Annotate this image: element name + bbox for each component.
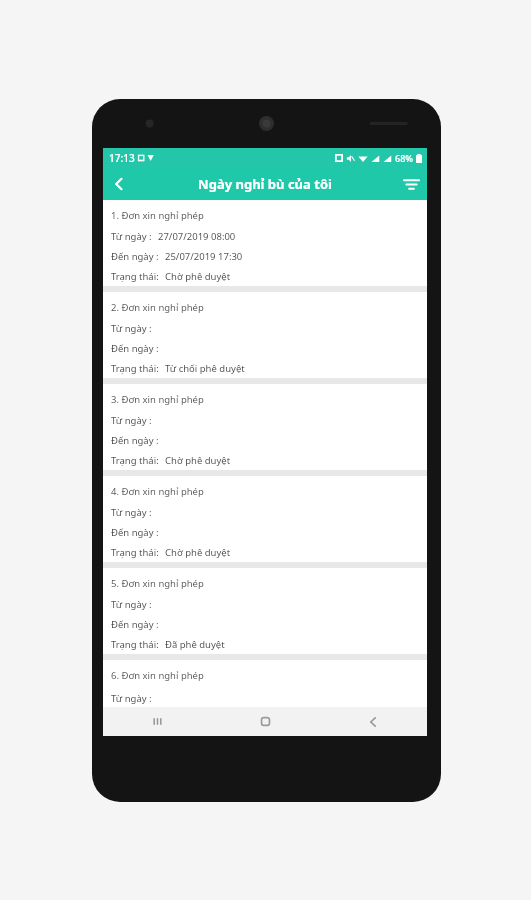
staticText: Trạng thái: xyxy=(111,454,159,467)
staticText: Trạng thái: xyxy=(111,270,159,283)
button[interactable]: Home xyxy=(211,707,319,736)
button[interactable]: 1. Đơn xin nghỉ phép xyxy=(103,200,427,286)
staticText: Đến ngày : xyxy=(111,342,159,355)
button[interactable]: Filter xyxy=(395,168,427,200)
staticText: Từ chối phê duyệt xyxy=(165,362,245,375)
staticText: Đến ngày : xyxy=(111,434,159,447)
staticText: Từ ngày : xyxy=(111,414,152,427)
staticText: Trạng thái: xyxy=(111,362,159,375)
staticText: Đến ngày : xyxy=(111,526,159,539)
staticText: Đã phê duyệt xyxy=(165,638,225,651)
staticText: 17:13 xyxy=(109,151,135,165)
staticText: Chờ phê duyệt xyxy=(165,454,231,467)
staticText: Từ ngày : xyxy=(111,506,152,519)
staticText: Chờ phê duyệt xyxy=(165,270,231,283)
button[interactable]: Back xyxy=(319,707,427,736)
staticText: 6. Đơn xin nghỉ phép xyxy=(111,669,204,682)
staticText: Ngày nghỉ bù của tôi xyxy=(198,175,332,193)
button[interactable]: Back xyxy=(103,168,135,200)
staticText: 1. Đơn xin nghỉ phép xyxy=(111,209,204,222)
staticText: Đến ngày : xyxy=(111,618,159,631)
staticText: Từ ngày : xyxy=(111,598,152,611)
staticText: 68% xyxy=(395,152,413,164)
staticText: 25/07/2019 17:30 xyxy=(165,250,243,263)
button[interactable]: 3. Đơn xin nghỉ phép xyxy=(103,384,427,470)
staticText: Đến ngày : xyxy=(111,250,159,263)
staticText: Từ ngày : xyxy=(111,322,152,335)
button[interactable]: 6. Đơn xin nghỉ phép xyxy=(103,660,427,707)
staticText: Trạng thái: xyxy=(111,638,159,651)
staticText: 4. Đơn xin nghỉ phép xyxy=(111,485,204,498)
button[interactable]: 5. Đơn xin nghỉ phép xyxy=(103,568,427,654)
button[interactable]: Recent apps xyxy=(103,707,211,736)
staticText: Từ ngày : xyxy=(111,692,152,705)
button[interactable]: 4. Đơn xin nghỉ phép xyxy=(103,476,427,562)
staticText: 27/07/2019 08:00 xyxy=(158,230,236,243)
staticText: Từ ngày : xyxy=(111,230,152,243)
staticText: 3. Đơn xin nghỉ phép xyxy=(111,393,204,406)
staticText: 5. Đơn xin nghỉ phép xyxy=(111,577,204,590)
staticText: 2. Đơn xin nghỉ phép xyxy=(111,301,204,314)
staticText: Chờ phê duyệt xyxy=(165,546,231,559)
staticText: Trạng thái: xyxy=(111,546,159,559)
button[interactable]: 2. Đơn xin nghỉ phép xyxy=(103,292,427,378)
